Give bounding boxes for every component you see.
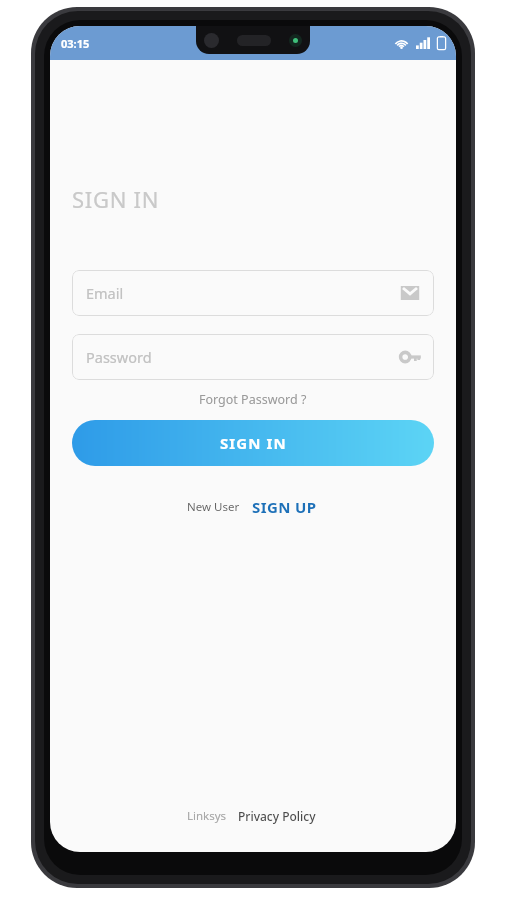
button[interactable]: Privacy Policy — [235, 806, 319, 826]
button[interactable]: Password — [72, 334, 434, 380]
staticText: Password — [86, 347, 152, 367]
button[interactable]: SIGN IN — [72, 420, 434, 466]
button[interactable]: Email — [72, 270, 434, 316]
staticText: Email — [86, 283, 124, 303]
staticText: SIGN IN — [220, 433, 287, 453]
staticText: Linksys — [187, 808, 227, 824]
staticText: New User — [187, 499, 240, 515]
other: Email — [400, 283, 420, 303]
staticText: 03:15 — [61, 36, 90, 51]
staticText: Privacy Policy — [238, 808, 316, 824]
staticText: SIGN UP — [252, 497, 317, 517]
button[interactable]: Forgot Password ? — [193, 389, 313, 410]
button[interactable]: SIGN UP — [249, 495, 320, 519]
staticText: SIGN IN — [72, 184, 160, 214]
staticText: Forgot Password ? — [199, 391, 307, 408]
other: Password — [400, 347, 420, 367]
